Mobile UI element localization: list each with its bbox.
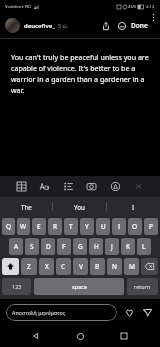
staticText: 4:12 (146, 4, 155, 10)
staticText: Vodafone NO (5, 4, 32, 10)
staticText: 123 (12, 283, 22, 290)
staticText: W (20, 222, 27, 231)
button[interactable]: P (144, 218, 158, 235)
staticText: 46% (128, 4, 137, 10)
staticText: Done (131, 21, 148, 30)
button[interactable]: Backspace (141, 258, 158, 275)
staticText: O (132, 222, 138, 231)
staticText: U (101, 222, 106, 231)
staticText: I (118, 222, 121, 231)
button[interactable]: Like (123, 306, 136, 319)
staticText: E (37, 222, 41, 231)
staticText: I (132, 203, 135, 211)
button[interactable]: A (9, 238, 23, 255)
staticText: L (142, 242, 146, 251)
staticText: space (72, 283, 87, 290)
button[interactable]: Table (13, 178, 30, 195)
staticText: deucefive_ (24, 22, 55, 30)
button[interactable]: F (57, 238, 71, 255)
button[interactable]: T (64, 218, 78, 235)
staticText: V (79, 262, 83, 271)
button[interactable]: Y (80, 218, 94, 235)
button[interactable]: S (25, 238, 39, 255)
staticText: P (149, 222, 153, 231)
staticText: F (62, 242, 66, 251)
button[interactable]: N (107, 258, 122, 275)
button[interactable]: The (0, 197, 52, 216)
staticText: The (21, 203, 32, 211)
staticText: B (95, 262, 100, 271)
staticText: S (30, 242, 34, 251)
staticText: A (14, 242, 19, 251)
staticText: M (129, 262, 135, 271)
staticText: H (94, 242, 99, 251)
staticText: return (134, 283, 151, 290)
button[interactable]: L (137, 238, 151, 255)
button[interactable]: 123 (2, 278, 31, 295)
button[interactable]: Back (28, 328, 44, 344)
staticText: T (69, 222, 73, 231)
button[interactable]: H (89, 238, 103, 255)
staticText: R (53, 222, 58, 231)
button[interactable]: space (34, 278, 124, 295)
staticText: K (126, 242, 131, 251)
button[interactable]: Close (130, 178, 147, 195)
button[interactable]: G (73, 238, 87, 255)
button[interactable]: Home (72, 328, 88, 344)
button[interactable]: Z (21, 258, 37, 275)
staticText: You can't truly be peaceful unless you a… (11, 52, 151, 95)
button[interactable]: X (39, 258, 54, 275)
button[interactable]: K (121, 238, 135, 255)
button[interactable]: D (41, 238, 55, 255)
staticText: G (78, 242, 83, 251)
button[interactable]: J (105, 238, 119, 255)
button[interactable]: Αποστολή μηνύματος (6, 304, 117, 321)
button[interactable]: O (128, 218, 142, 235)
button[interactable]: return (127, 278, 158, 295)
button[interactable]: Profile photo (5, 18, 20, 33)
staticText: D (46, 242, 51, 251)
staticText: C (61, 262, 66, 271)
button[interactable]: W (17, 218, 30, 235)
button[interactable]: C (56, 258, 71, 275)
button[interactable]: E (32, 218, 46, 235)
staticText: You (74, 203, 85, 211)
button[interactable]: I (112, 218, 126, 235)
staticText: N (112, 262, 117, 271)
staticText: Y (85, 222, 89, 231)
button[interactable]: Recents (116, 328, 132, 344)
staticText: Q (6, 222, 12, 231)
button[interactable]: Share (98, 18, 113, 33)
button[interactable]: V (73, 258, 88, 275)
button[interactable]: U (96, 218, 110, 235)
button[interactable]: Shift (2, 258, 19, 275)
button[interactable]: List (60, 178, 77, 195)
staticText: J (111, 242, 113, 251)
button[interactable]: Q (2, 218, 15, 235)
button[interactable]: Camera (83, 178, 100, 195)
button[interactable]: M (124, 258, 139, 275)
button[interactable]: I (107, 197, 160, 216)
staticText: Z (27, 262, 31, 271)
staticText: 5 ώ. (58, 22, 69, 29)
staticText: X (45, 262, 49, 271)
button[interactable]: Text format (36, 178, 53, 195)
button[interactable]: You (53, 197, 106, 216)
button[interactable]: R (48, 218, 62, 235)
button[interactable]: B (90, 258, 105, 275)
staticText: Αποστολή μηνύματος (12, 309, 66, 316)
button[interactable]: More options (149, 13, 157, 38)
button[interactable]: Emoji (114, 18, 129, 33)
button[interactable]: Done (130, 21, 149, 30)
button[interactable]: Draw (107, 178, 124, 195)
button[interactable]: Send (141, 306, 154, 319)
